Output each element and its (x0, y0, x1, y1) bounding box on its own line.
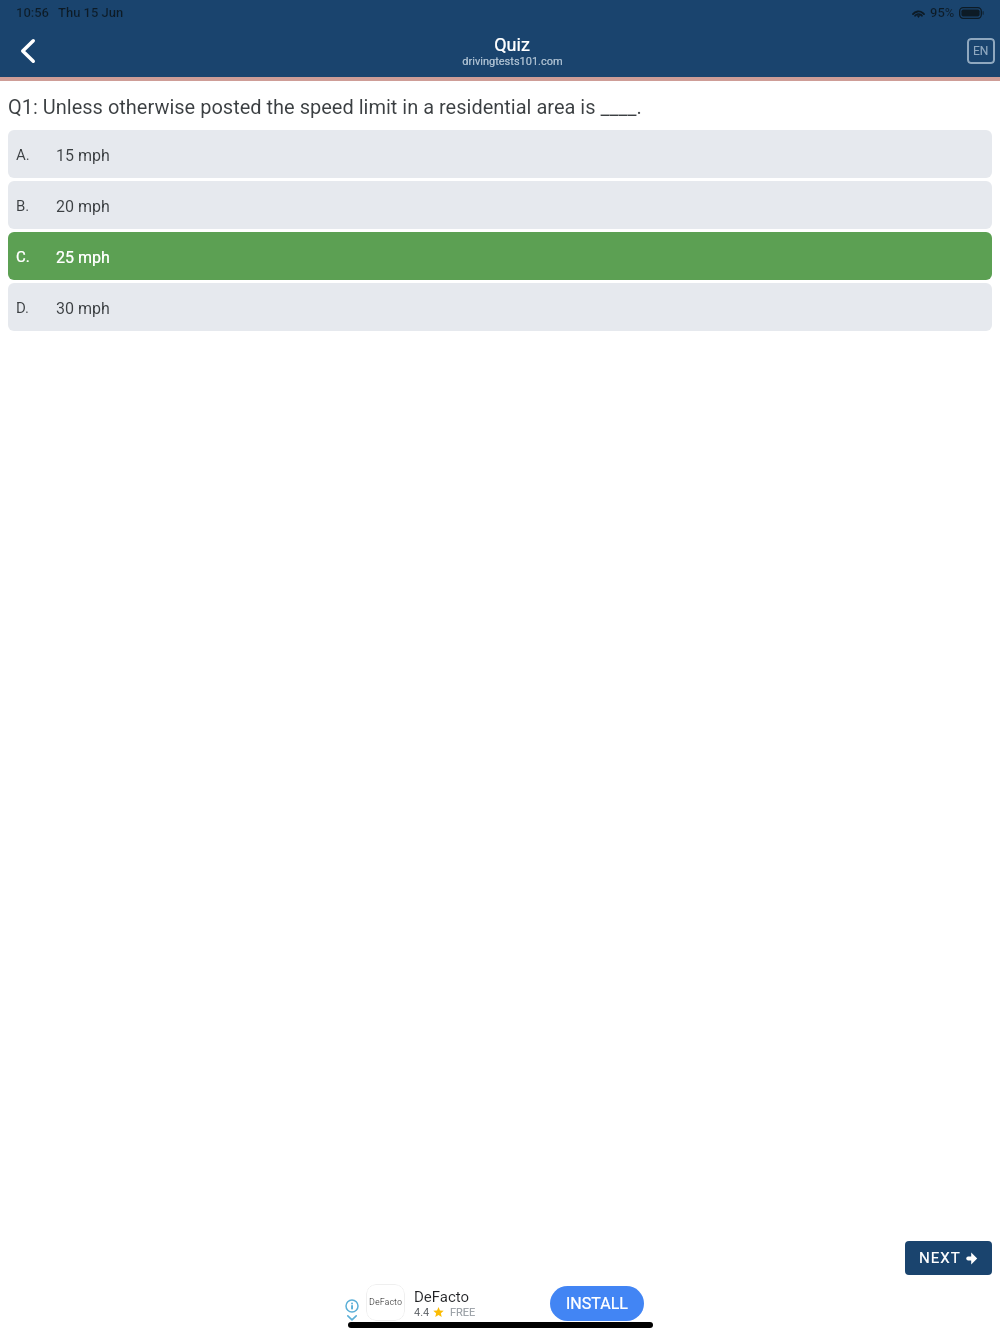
button[interactable]: EN (967, 38, 995, 64)
staticText: DeFacto (414, 1288, 470, 1306)
staticText: B. (16, 197, 30, 215)
button[interactable]: A. (8, 130, 992, 178)
staticText: DeFacto (369, 1297, 403, 1308)
staticText: 15 mph (56, 146, 110, 165)
staticText: 30 mph (56, 299, 110, 318)
staticText: 25 mph (56, 248, 110, 267)
staticText: D. (16, 299, 30, 317)
button[interactable]: B. (8, 181, 992, 229)
staticText: EN (973, 44, 989, 58)
button[interactable]: INSTALL (550, 1286, 644, 1321)
staticText: Quiz (494, 34, 530, 55)
staticText: NEXT (919, 1249, 961, 1267)
button[interactable]: Back (0, 24, 56, 77)
staticText: 20 mph (56, 197, 110, 216)
button[interactable]: NEXT (905, 1241, 992, 1275)
staticText: INSTALL (566, 1294, 628, 1313)
staticText: 95% (930, 5, 955, 20)
staticText: Q1: Unless otherwise posted the speed li… (8, 95, 642, 118)
staticText: Thu 15 Jun (58, 5, 124, 20)
staticText: drivingtests101.com (462, 55, 563, 68)
staticText: FREE (450, 1306, 476, 1319)
button[interactable]: Ad info (344, 1298, 360, 1314)
staticText: A. (16, 146, 30, 164)
button[interactable]: D. (8, 283, 992, 331)
button[interactable]: C. (8, 232, 992, 280)
staticText: C. (16, 248, 30, 266)
staticText: 4.4 (414, 1306, 430, 1319)
staticText: 10:56 (16, 5, 49, 20)
